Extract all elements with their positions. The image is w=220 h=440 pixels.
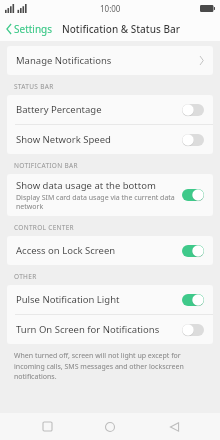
button[interactable]: On — [182, 245, 204, 257]
button[interactable]: Show Network Speed — [7, 125, 213, 154]
staticText: STATUS BAR — [14, 82, 54, 91]
button[interactable]: Home — [93, 413, 127, 440]
staticText: Display SIM card data usage via the curr… — [16, 193, 176, 211]
button[interactable]: Pulse Notification Light — [7, 285, 213, 314]
staticText: Notification & Status Bar — [62, 22, 180, 36]
staticText: NOTIFICATION BAR — [14, 161, 78, 170]
button[interactable]: Access on Lock Screen — [7, 236, 213, 265]
button[interactable]: Show data usage at the bottom — [7, 174, 213, 216]
button[interactable]: On — [182, 294, 204, 306]
button[interactable]: Turn On Screen for Notifications — [7, 315, 213, 344]
staticText: Show Network Speed — [16, 133, 111, 146]
button[interactable]: Manage Notifications — [7, 46, 213, 75]
button[interactable]: Settings — [0, 17, 57, 41]
staticText: Battery Percentage — [16, 103, 102, 116]
staticText: Manage Notifications — [16, 54, 199, 67]
button[interactable]: On — [182, 189, 204, 201]
staticText: Show data usage at the bottom — [16, 179, 156, 192]
staticText: Access on Lock Screen — [16, 244, 116, 257]
staticText: When turned off, screen will not light u… — [14, 351, 206, 381]
staticText: OTHER — [14, 272, 37, 281]
staticText: 10:00 — [100, 3, 121, 14]
staticText: Turn On Screen for Notifications — [16, 323, 160, 336]
button[interactable]: Off — [182, 134, 204, 146]
button[interactable]: Off — [182, 324, 204, 336]
button[interactable]: Battery Percentage — [7, 95, 213, 124]
staticText: CONTROL CENTER — [14, 223, 74, 232]
staticText: Pulse Notification Light — [16, 293, 120, 306]
staticText: Settings — [14, 22, 53, 36]
button[interactable]: Recent apps — [30, 413, 64, 440]
button[interactable]: Off — [182, 104, 204, 116]
button[interactable]: Back — [157, 413, 191, 440]
